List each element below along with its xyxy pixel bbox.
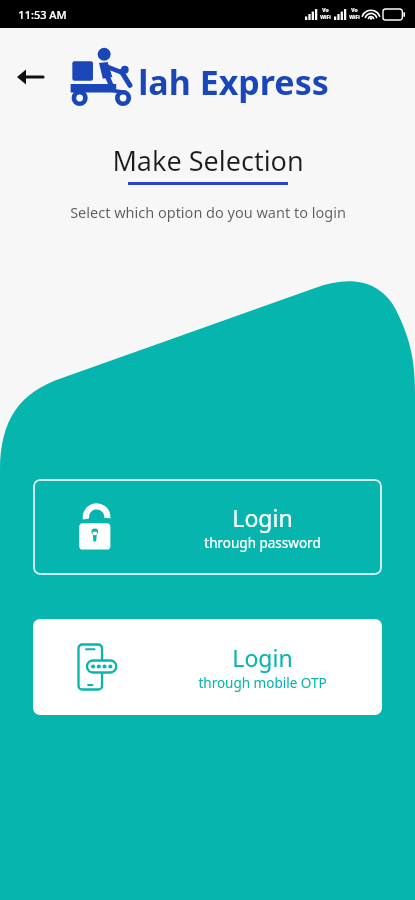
- button[interactable]: Back: [8, 55, 52, 99]
- staticText: Login: [232, 642, 293, 673]
- staticText: through mobile OTP: [198, 674, 327, 692]
- button[interactable]: Login: [33, 479, 382, 575]
- staticText: Vo: [322, 7, 329, 14]
- staticText: through password: [204, 534, 321, 552]
- button[interactable]: Login: [33, 619, 382, 715]
- staticText: lah Express: [138, 59, 329, 105]
- staticText: Vo: [351, 7, 358, 14]
- staticText: WiFi: [320, 14, 331, 21]
- staticText: Make Selection: [112, 142, 304, 179]
- staticText: WiFi: [349, 14, 360, 21]
- staticText: Select which option do you want to login: [70, 202, 346, 222]
- staticText: 11:53 AM: [18, 7, 67, 22]
- staticText: Login: [232, 502, 293, 533]
